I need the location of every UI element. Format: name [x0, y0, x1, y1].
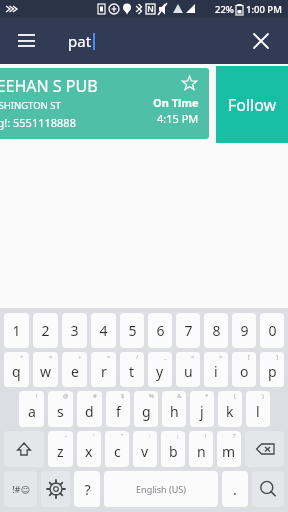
- button[interactable]: =: [91, 352, 116, 387]
- button[interactable]: ÷: [62, 352, 87, 387]
- staticText: 4:15 PM: [157, 111, 199, 126]
- button[interactable]: shift: [4, 431, 44, 467]
- staticText: 8: [212, 321, 221, 340]
- button[interactable]: 7: [176, 313, 200, 348]
- staticText: ×: [49, 353, 53, 361]
- button[interactable]: ': [77, 431, 101, 467]
- button[interactable]: <: [176, 352, 200, 387]
- button[interactable]: #: [77, 391, 102, 427]
- staticText: ]: [276, 353, 278, 361]
- staticText: /: [136, 353, 139, 361]
- button[interactable]: Clear search: [242, 22, 280, 60]
- button[interactable]: ?: [217, 431, 241, 467]
- button[interactable]: 3: [62, 313, 87, 348]
- staticText: [: [248, 353, 250, 361]
- button[interactable]: Follow: [216, 66, 288, 143]
- staticText: 6: [156, 321, 165, 340]
- button[interactable]: English (US): [104, 471, 218, 507]
- staticText: 22%: [215, 3, 234, 16]
- button[interactable]: ": [105, 431, 129, 467]
- staticText: c: [114, 442, 121, 461]
- button[interactable]: [: [232, 352, 256, 387]
- staticText: d: [85, 402, 94, 421]
- button[interactable]: -: [48, 431, 73, 467]
- staticText: v: [141, 442, 149, 461]
- button[interactable]: *: [190, 391, 214, 427]
- button[interactable]: 4: [91, 313, 116, 348]
- button[interactable]: 6: [148, 313, 172, 348]
- staticText: ): [262, 392, 264, 400]
- button[interactable]: +: [4, 352, 29, 387]
- button[interactable]: !: [19, 391, 44, 427]
- button[interactable]: gear: [41, 471, 70, 507]
- button[interactable]: &: [162, 391, 186, 427]
- staticText: w: [40, 362, 52, 381]
- staticText: On Time: [153, 95, 199, 110]
- button[interactable]: :: [133, 431, 157, 467]
- staticText: p: [268, 362, 277, 381]
- button[interactable]: /: [120, 352, 144, 387]
- staticText: j: [200, 402, 204, 421]
- staticText: t: [129, 362, 135, 381]
- staticText: x: [85, 442, 93, 461]
- staticText: a: [28, 402, 36, 421]
- staticText: ': [93, 432, 95, 440]
- button[interactable]: _: [148, 352, 172, 387]
- staticText: 5: [128, 321, 137, 340]
- staticText: >: [219, 353, 223, 361]
- staticText: z: [57, 442, 64, 461]
- button[interactable]: ]: [260, 352, 284, 387]
- button[interactable]: 0: [260, 313, 284, 348]
- button[interactable]: %: [134, 391, 158, 427]
- staticText: Doug!: 5551118888: [0, 115, 76, 130]
- button[interactable]: >: [204, 352, 228, 387]
- button[interactable]: ;: [161, 431, 185, 467]
- button[interactable]: search: [252, 471, 284, 507]
- staticText: l: [256, 402, 260, 421]
- button[interactable]: 8: [204, 313, 228, 348]
- staticText: English (US): [136, 483, 186, 495]
- button[interactable]: (: [218, 391, 242, 427]
- button[interactable]: 9: [232, 313, 256, 348]
- button[interactable]: 1: [4, 313, 29, 348]
- staticText: m: [222, 442, 236, 461]
- staticText: Follow: [228, 94, 277, 116]
- staticText: 1:00 PM: [246, 3, 282, 16]
- button[interactable]: Menu: [8, 23, 44, 59]
- button[interactable]: back: [245, 431, 284, 467]
- button[interactable]: ×: [33, 352, 58, 387]
- staticText: pat: [68, 31, 92, 51]
- button[interactable]: SHEEHAN S PUB: [0, 68, 209, 139]
- staticText: SHEEHAN S PUB: [0, 75, 98, 97]
- staticText: g: [142, 402, 151, 421]
- staticText: $: [121, 392, 125, 400]
- staticText: .: [233, 480, 237, 499]
- staticText: 1 WASHINGTON ST: [0, 99, 61, 112]
- button[interactable]: 2: [33, 313, 58, 348]
- staticText: 2: [41, 321, 50, 340]
- staticText: b: [169, 442, 178, 461]
- button[interactable]: !: [189, 431, 213, 467]
- staticText: s: [57, 402, 64, 421]
- button[interactable]: ?: [74, 471, 100, 507]
- staticText: _: [164, 353, 167, 361]
- button[interactable]: $: [106, 391, 130, 427]
- staticText: -: [65, 432, 67, 440]
- staticText: !#☺: [12, 483, 30, 495]
- staticText: (: [234, 392, 236, 400]
- button[interactable]: ): [246, 391, 270, 427]
- staticText: 0: [268, 321, 277, 340]
- staticText: r: [101, 362, 107, 381]
- staticText: ": [121, 432, 124, 440]
- staticText: n: [197, 442, 206, 461]
- button[interactable]: .: [222, 471, 248, 507]
- button[interactable]: @: [48, 391, 73, 427]
- button[interactable]: 5: [120, 313, 144, 348]
- staticText: ;: [177, 432, 179, 440]
- staticText: *: [205, 392, 209, 400]
- staticText: ?: [233, 432, 236, 440]
- button[interactable]: !#☺: [4, 471, 37, 507]
- staticText: h: [170, 402, 179, 421]
- button[interactable]: Favorite: [179, 73, 199, 93]
- staticText: 4: [99, 321, 108, 340]
